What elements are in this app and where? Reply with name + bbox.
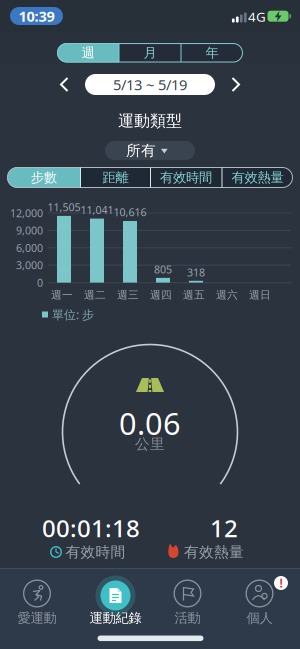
- button[interactable]: 5/13 ~ 5/19: [85, 74, 215, 95]
- staticText: 個人: [246, 610, 272, 626]
- button[interactable]: 距離: [80, 167, 150, 188]
- staticText: 0.06: [119, 403, 181, 443]
- staticText: 10:39: [18, 6, 54, 26]
- staticText: 805: [154, 262, 172, 276]
- staticText: 愛運動: [17, 610, 56, 626]
- staticText: 有效熱量: [184, 543, 244, 561]
- staticText: 週一: [51, 288, 73, 301]
- staticText: 週: [81, 45, 94, 61]
- button[interactable]: Next week: [0, 0, 300, 649]
- button[interactable]: 所有: [105, 141, 195, 160]
- staticText: 週日: [249, 288, 271, 301]
- staticText: 318: [187, 265, 205, 279]
- staticText: 週六: [216, 288, 238, 301]
- staticText: 運動紀錄: [89, 610, 141, 626]
- staticText: 單位: 步: [52, 306, 94, 322]
- staticText: 11,505: [47, 200, 80, 214]
- staticText: 週三: [117, 288, 139, 301]
- button[interactable]: 有效時間: [150, 167, 221, 188]
- button[interactable]: Previous week: [0, 0, 300, 649]
- button[interactable]: 年: [181, 43, 243, 62]
- staticText: 年: [205, 45, 218, 61]
- button[interactable]: !: [225, 565, 300, 627]
- button[interactable]: 運動紀錄: [75, 565, 150, 627]
- staticText: 有效熱量: [231, 169, 283, 186]
- button[interactable]: 週: [57, 43, 119, 62]
- staticText: 週二: [84, 288, 106, 301]
- staticText: 3,000: [16, 258, 43, 272]
- staticText: 有效時間: [65, 543, 125, 561]
- staticText: 11,041: [80, 203, 113, 217]
- staticText: !: [279, 575, 282, 591]
- staticText: 月: [143, 45, 156, 61]
- staticText: 週五: [183, 288, 205, 301]
- button[interactable]: 步數: [7, 167, 80, 188]
- staticText: 所有: [126, 141, 156, 159]
- staticText: 運動類型: [118, 111, 182, 131]
- staticText: 00:01:18: [42, 512, 140, 544]
- staticText: 12,000: [10, 206, 43, 220]
- staticText: 9,000: [16, 223, 43, 237]
- staticText: 12: [210, 512, 238, 544]
- staticText: 0: [37, 275, 43, 290]
- button[interactable]: 有效熱量: [222, 167, 293, 188]
- staticText: 活動: [174, 610, 200, 626]
- staticText: 6,000: [16, 241, 43, 255]
- staticText: 步數: [31, 169, 57, 186]
- staticText: 距離: [102, 169, 128, 186]
- staticText: 有效時間: [160, 169, 212, 186]
- staticText: 週四: [150, 288, 172, 301]
- button[interactable]: 愛運動: [0, 565, 74, 627]
- staticText: 公里: [135, 435, 165, 453]
- button[interactable]: 活動: [150, 565, 225, 627]
- staticText: 5/13 ~ 5/19: [113, 75, 187, 94]
- button[interactable]: 月: [119, 43, 181, 62]
- staticText: 4G: [248, 8, 266, 25]
- staticText: 10,616: [113, 205, 146, 219]
